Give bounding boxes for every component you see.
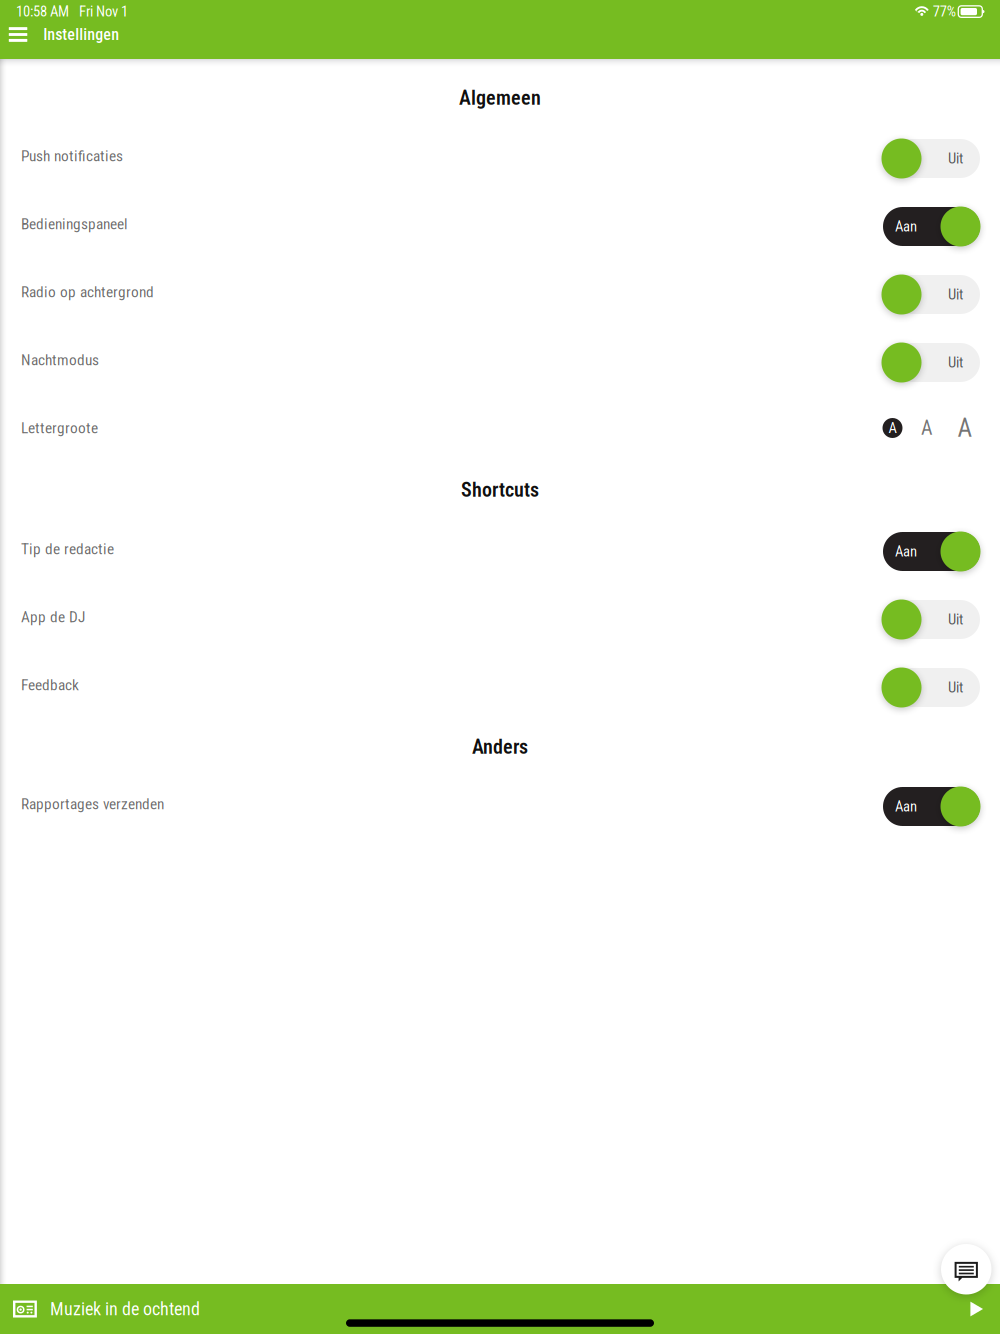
staticText: A [957, 413, 972, 443]
staticText: Radio op achtergrond [21, 283, 154, 301]
staticText: Nachtmodus [21, 351, 99, 369]
staticText: Anders [472, 735, 528, 759]
button[interactable]: App de DJ [0, 583, 1000, 651]
staticText: 77% [933, 3, 956, 20]
button[interactable]: Kleine lettergrootte [879, 404, 914, 452]
button[interactable]: Uit [881, 336, 982, 384]
staticText: Aan [895, 798, 917, 815]
staticText: Bedieningspaneel [21, 215, 128, 233]
button[interactable]: Nachtmodus [0, 326, 1000, 394]
staticText: 10:58 AM [16, 3, 69, 20]
staticText: Aan [895, 543, 917, 560]
staticText: Fri Nov 1 [79, 3, 128, 20]
button[interactable]: Rapportages verzenden [0, 770, 1000, 838]
staticText: Instellingen [43, 25, 119, 44]
button[interactable]: Grote lettergrootte [948, 404, 982, 452]
staticText: Lettergroote [21, 419, 98, 437]
staticText: Uit [948, 150, 963, 167]
button[interactable]: Chat [941, 1244, 991, 1294]
staticText: App de DJ [21, 608, 85, 626]
staticText: Uit [948, 354, 963, 371]
button[interactable]: Aan [881, 780, 982, 828]
staticText: Algemeen [459, 86, 541, 110]
staticText: Feedback [21, 676, 79, 694]
button[interactable]: Uit [881, 593, 982, 641]
button[interactable]: Feedback [0, 651, 1000, 719]
staticText: Aan [895, 218, 917, 235]
staticText: A [921, 416, 933, 440]
staticText: Tip de redactie [21, 540, 114, 558]
button[interactable]: Radio op achtergrond [0, 258, 1000, 326]
button[interactable]: Menu [9, 19, 27, 49]
staticText: Uit [948, 286, 963, 303]
button[interactable]: Uit [881, 132, 982, 180]
button[interactable]: Aan [881, 525, 982, 573]
staticText: Muziek in de ochtend [50, 1298, 200, 1320]
button[interactable]: Muziek in de ochtend [0, 1284, 1000, 1334]
staticText: Shortcuts [461, 478, 539, 502]
button[interactable]: Uit [881, 661, 982, 709]
button[interactable]: Normale lettergrootte [914, 404, 948, 452]
staticText: Push notificaties [21, 147, 123, 165]
button[interactable]: Uit [881, 268, 982, 316]
button[interactable]: Aan [881, 200, 982, 248]
button[interactable]: Tip de redactie [0, 515, 1000, 583]
staticText: Rapportages verzenden [21, 795, 164, 813]
staticText: Uit [948, 679, 963, 696]
button[interactable]: Bedieningspaneel [0, 190, 1000, 258]
staticText: Uit [948, 611, 963, 628]
staticText: A [888, 419, 896, 437]
button[interactable]: Push notificaties [0, 122, 1000, 190]
